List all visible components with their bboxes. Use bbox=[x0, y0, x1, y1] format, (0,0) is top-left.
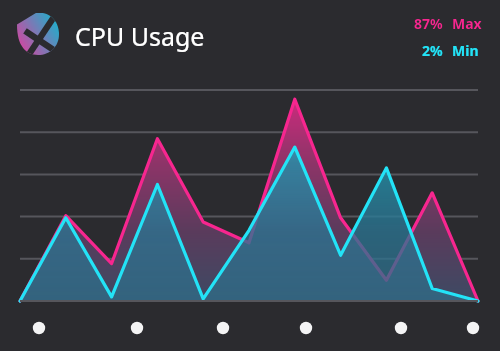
other: Timeline markers bbox=[0, 0, 500, 351]
staticText: CPU Usage bbox=[75, 19, 205, 53]
staticText: Min bbox=[452, 41, 479, 60]
staticText: 87% bbox=[414, 14, 443, 33]
button[interactable]: 87% bbox=[414, 14, 486, 33]
button[interactable]: 2% bbox=[422, 41, 486, 60]
staticText: Max bbox=[452, 14, 482, 33]
staticText: 2% bbox=[422, 41, 443, 60]
button[interactable]: App logo bbox=[17, 13, 59, 55]
